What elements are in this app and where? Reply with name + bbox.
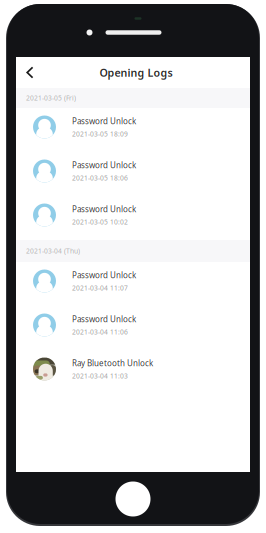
staticText: Password Unlock <box>72 160 136 170</box>
staticText: 2021-03-04 11:06 <box>72 327 128 336</box>
staticText: 2021-03-05 18:09 <box>72 129 128 138</box>
button[interactable]: Password Unlock <box>16 152 250 196</box>
button[interactable]: Password Unlock <box>16 306 250 350</box>
staticText: Password Unlock <box>72 116 136 126</box>
staticText: Ray Bluetooth Unlock <box>72 358 153 368</box>
staticText: Password Unlock <box>72 204 136 214</box>
staticText: 2021-03-05 10:02 <box>72 217 128 226</box>
staticText: Password Unlock <box>72 270 136 280</box>
button[interactable]: Back <box>17 59 43 85</box>
button[interactable]: Ray Bluetooth Unlock <box>16 350 250 394</box>
staticText: 2021-03-04 11:03 <box>72 371 128 380</box>
button[interactable]: Password Unlock <box>16 262 250 306</box>
staticText: 2021-03-05 18:06 <box>72 173 128 182</box>
staticText: 2021-03-04 11:07 <box>72 283 128 292</box>
button[interactable]: Password Unlock <box>16 196 250 240</box>
staticText: Password Unlock <box>72 314 136 324</box>
button[interactable]: Password Unlock <box>16 108 250 152</box>
staticText: 2021-03-04 (Thu) <box>26 247 80 255</box>
staticText: 2021-03-05 (Fri) <box>26 94 76 102</box>
staticText: Opening Logs <box>99 65 172 80</box>
